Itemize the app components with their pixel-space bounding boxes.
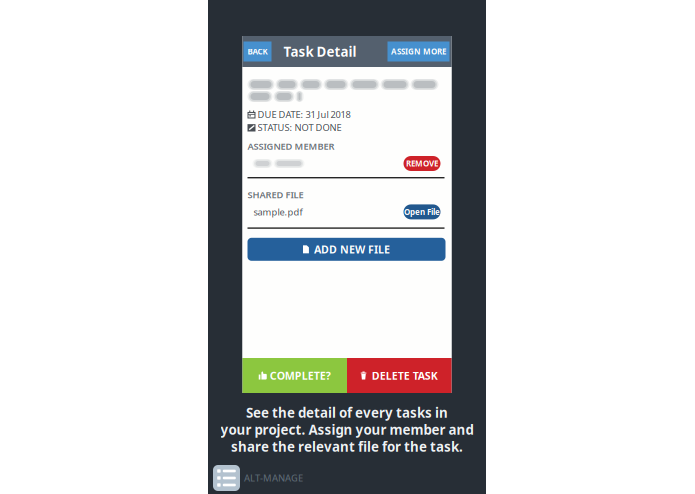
button[interactable]: REMOVE [403,156,440,171]
staticText: SHARED FILE [247,188,303,201]
button[interactable]: DELETE TASK [347,358,451,393]
button[interactable]: Open File [403,204,440,219]
button[interactable]: BACK [243,41,271,61]
staticText: Task Detail [283,43,356,60]
staticText: REMOVE [406,158,438,169]
staticText: Open File [404,207,440,217]
staticText: COMPLETE? [270,368,331,383]
staticText: sample.pdf [253,206,302,218]
button[interactable]: ASSIGN MORE [387,41,451,61]
staticText: STATUS: NOT DONE [257,121,341,134]
staticText: ASSIGNED MEMBER [247,140,334,152]
button[interactable]: COMPLETE? [242,358,347,393]
staticText: ALT-MANAGE [244,472,303,484]
staticText: See the detail of every tasks in [246,404,448,421]
staticText: share the relevant file for the task. [231,438,463,455]
staticText: ASSIGN MORE [391,46,446,57]
button[interactable]: ADD NEW FILE [247,238,445,261]
staticText: DUE DATE: 31 Jul 2018 [257,108,350,121]
staticText: ADD NEW FILE [314,242,390,256]
staticText: BACK [247,46,267,57]
staticText: DELETE TASK [372,368,438,383]
staticText: your project. Assign your member and [220,421,473,438]
